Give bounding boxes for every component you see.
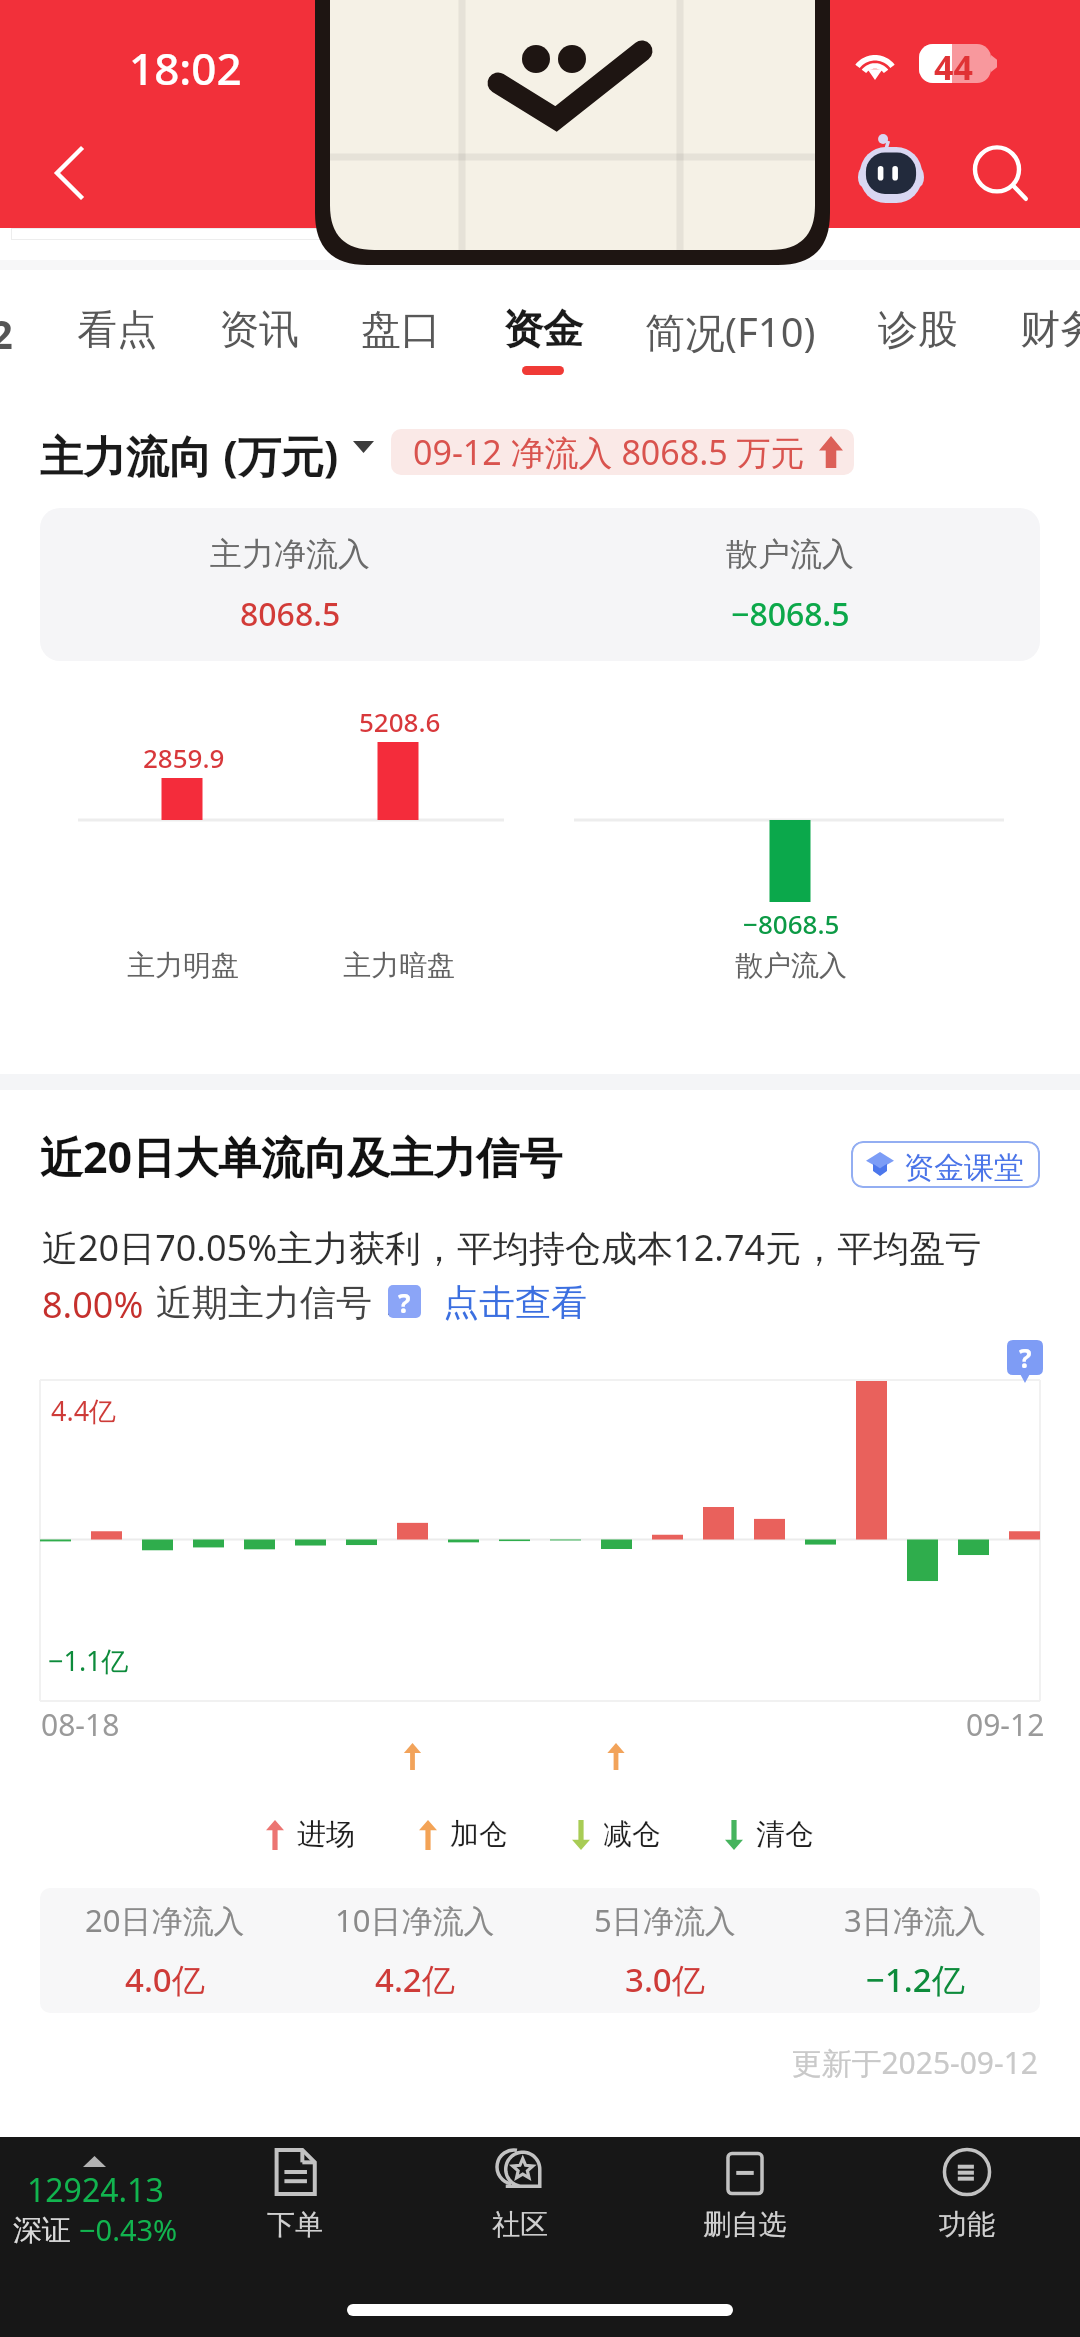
button[interactable]: 功能 <box>897 2149 1037 2242</box>
staticText: 加仓 <box>450 1816 508 1853</box>
staticText: −8068.5 <box>731 592 850 636</box>
button[interactable]: 下单 <box>225 2149 365 2242</box>
button[interactable]: 诊股 <box>878 228 958 380</box>
staticText: 近20日70.05%主力获利，平均持仓成本12.74元，平均盈亏 <box>42 1223 982 1272</box>
staticText: 18:02 <box>129 38 242 98</box>
button[interactable]: 点击查看 <box>443 1280 587 1325</box>
button[interactable]: 12924.13 <box>0 2137 190 2257</box>
staticText: 盘口 <box>361 304 441 354</box>
staticText: 资讯 <box>219 304 299 354</box>
button[interactable]: 资金课堂 <box>851 1141 1040 1188</box>
staticText: −1.2亿 <box>866 1957 965 2002</box>
button[interactable]: 资讯 <box>219 228 299 380</box>
button[interactable]: 资金 <box>503 228 583 380</box>
staticText: 减仓 <box>603 1816 661 1853</box>
staticText: 散户流入 <box>735 948 847 983</box>
staticText: 3日净流入 <box>844 1899 986 1941</box>
staticText: 20日净流入 <box>85 1899 245 1941</box>
staticText: 功能 <box>939 2207 995 2242</box>
staticText: 4.4亿 <box>51 1392 117 1429</box>
staticText: 主力暗盘 <box>343 948 455 983</box>
staticText: 3.0亿 <box>625 1957 705 2002</box>
staticText: 2 <box>0 306 13 360</box>
staticText: 44 <box>934 44 973 83</box>
staticText: 深证 <box>13 2209 79 2249</box>
staticText: 主力净流入 <box>210 534 370 574</box>
staticText: 10日净流入 <box>335 1899 495 1941</box>
button[interactable]: Change period <box>338 424 388 470</box>
staticText: 4.0亿 <box>125 1957 205 2002</box>
staticText: 删自选 <box>703 2207 787 2242</box>
staticText: 资金 <box>503 304 583 354</box>
button[interactable]: 删自选 <box>675 2149 815 2242</box>
staticText: 12924.13 <box>27 2168 164 2212</box>
button[interactable]: AI assistant <box>843 127 939 223</box>
staticText: 5日净流入 <box>594 1899 736 1941</box>
staticText: 财务 <box>1020 304 1080 354</box>
staticText: 近期主力信号： <box>156 1280 408 1325</box>
button[interactable]: Back <box>21 125 117 221</box>
button[interactable]: 看点 <box>77 228 157 380</box>
staticText: 08-18 <box>41 1704 120 1745</box>
button[interactable]: 盘口 <box>361 228 441 380</box>
staticText: 看点 <box>77 304 157 354</box>
staticText: 进场 <box>297 1816 355 1853</box>
staticText: −0.43% <box>79 2210 178 2249</box>
staticText: 诊股 <box>878 304 958 354</box>
staticText: 4.2亿 <box>375 1957 455 2002</box>
button[interactable]: 社区 <box>450 2149 590 2242</box>
staticText: −1.1亿 <box>48 1642 129 1679</box>
staticText: 更新于2025-09-12 <box>0 2042 1038 2083</box>
button[interactable]: Chart help <box>1007 1340 1043 1375</box>
staticText: 主力流向 (万元) <box>40 426 339 485</box>
staticText: 8068.5 <box>240 592 341 636</box>
staticText: ? <box>1019 1340 1032 1375</box>
staticText: 下单 <box>267 2207 323 2242</box>
staticText: −8068.5 <box>743 906 840 941</box>
staticText: 2859.9 <box>143 740 225 775</box>
staticText: 资金课堂 <box>904 1149 1024 1187</box>
staticText: ? <box>398 1285 411 1318</box>
staticText: 09-12 <box>966 1704 1045 1745</box>
staticText: 5208.6 <box>359 704 441 739</box>
staticText: 社区 <box>492 2207 548 2242</box>
button[interactable]: 09-12 净流入 8068.5 万元 <box>391 429 854 475</box>
button[interactable]: Search <box>952 125 1048 221</box>
button[interactable]: 财务 <box>1020 228 1080 380</box>
staticText: 简况(F10) <box>645 304 816 359</box>
staticText: 主力明盘 <box>127 948 239 983</box>
staticText: 清仓 <box>756 1816 814 1853</box>
staticText: 8.00% <box>42 1280 144 1329</box>
staticText: 近20日大单流向及主力信号 <box>40 1127 563 1186</box>
button[interactable]: Help <box>388 1285 421 1318</box>
staticText: 09-12 净流入 8068.5 万元 <box>413 429 805 475</box>
button[interactable]: 简况(F10) <box>645 228 816 380</box>
staticText: 散户流入 <box>726 534 854 574</box>
